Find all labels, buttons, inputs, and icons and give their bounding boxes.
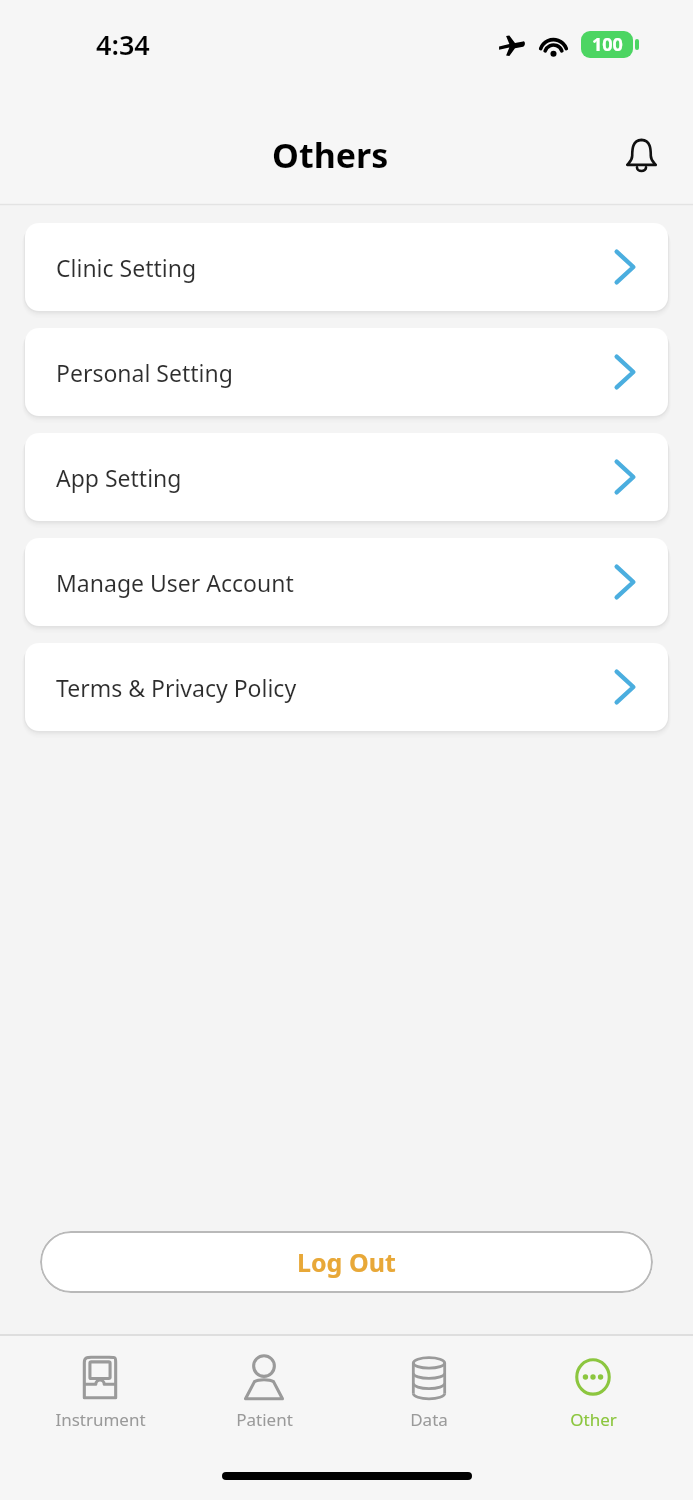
staticText: Terms & Privacy Policy	[56, 672, 297, 703]
button[interactable]: App Setting	[25, 433, 668, 521]
button[interactable]: Data	[364, 1350, 494, 1433]
button[interactable]: Notifications	[615, 129, 667, 181]
staticText: Other	[570, 1408, 617, 1431]
staticText: Manage User Account	[56, 567, 294, 598]
button[interactable]: Patient	[199, 1350, 329, 1433]
staticText: Patient	[236, 1408, 293, 1431]
staticText: Data	[410, 1408, 448, 1431]
staticText: Personal Setting	[56, 357, 233, 388]
staticText: 100	[592, 32, 623, 57]
staticText: Instrument	[55, 1408, 146, 1431]
button[interactable]: Personal Setting	[25, 328, 668, 416]
staticText: Log Out	[297, 1245, 396, 1279]
staticText: Clinic Setting	[56, 252, 197, 283]
button[interactable]: Log Out	[40, 1231, 653, 1293]
button[interactable]: Other	[528, 1350, 658, 1433]
button[interactable]: Terms & Privacy Policy	[25, 643, 668, 731]
button[interactable]: Manage User Account	[25, 538, 668, 626]
button[interactable]: Clinic Setting	[25, 223, 668, 311]
button[interactable]: Instrument	[35, 1350, 165, 1433]
staticText: App Setting	[56, 462, 182, 493]
staticText: Others	[272, 132, 389, 178]
staticText: 4:34	[96, 26, 150, 63]
